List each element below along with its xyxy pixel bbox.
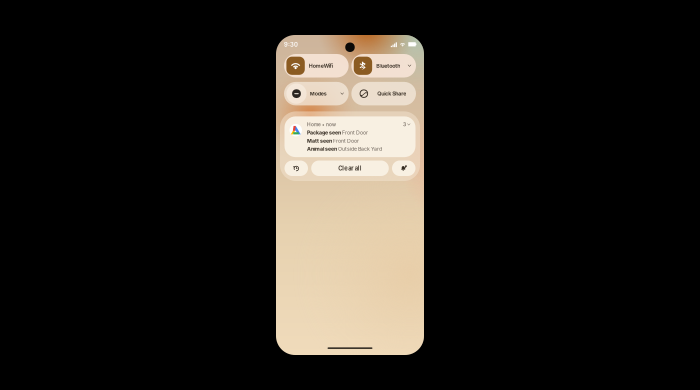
staticText: Front Door bbox=[332, 138, 359, 144]
button[interactable]: Notification settings bbox=[392, 160, 415, 176]
staticText: Front Door bbox=[341, 129, 368, 136]
button[interactable]: Quick Share bbox=[351, 82, 416, 105]
staticText: HomeWifi bbox=[309, 62, 333, 69]
staticText: Home • now bbox=[307, 122, 336, 127]
button[interactable]: HomeWifi bbox=[284, 54, 349, 77]
button[interactable]: Clear bbox=[311, 160, 389, 176]
button[interactable]: Modes bbox=[284, 82, 349, 105]
staticText: Animal seen bbox=[307, 146, 337, 152]
staticText: all bbox=[355, 165, 362, 172]
staticText: Bluetooth bbox=[376, 62, 400, 69]
button[interactable]: Notification history bbox=[284, 160, 308, 176]
button[interactable]: Home • now bbox=[284, 116, 415, 157]
staticText: Matt seen bbox=[307, 138, 332, 144]
staticText: Package seen bbox=[307, 129, 341, 136]
staticText: 3 bbox=[403, 121, 406, 127]
staticText: Clear bbox=[338, 165, 353, 172]
staticText: Modes bbox=[310, 90, 327, 97]
staticText: Outside Back Yard bbox=[337, 146, 382, 152]
staticText: Quick Share bbox=[377, 90, 406, 97]
staticText: 9:30 bbox=[284, 41, 298, 48]
button[interactable]: Bluetooth bbox=[351, 54, 416, 77]
